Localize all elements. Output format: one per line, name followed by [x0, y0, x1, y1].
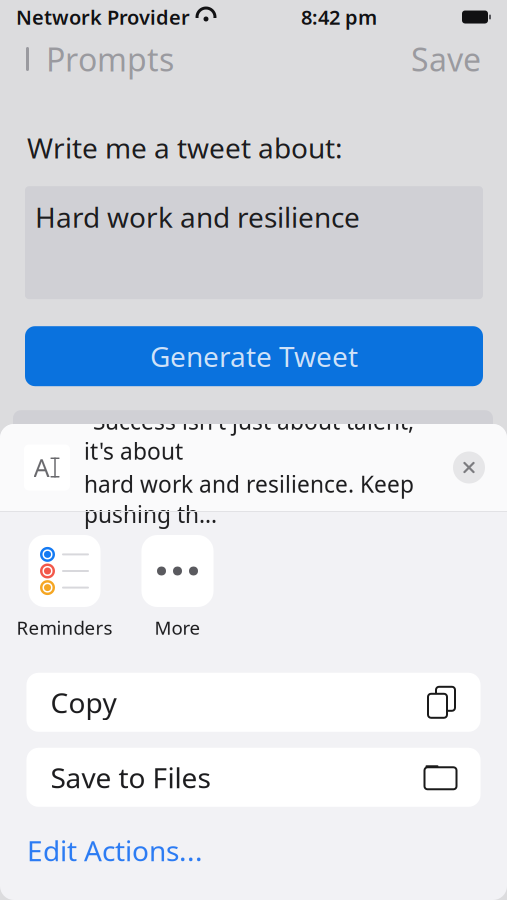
- staticText: Prompts: [46, 38, 174, 80]
- staticText: More: [154, 615, 200, 640]
- staticText: Save: [411, 38, 481, 80]
- button[interactable]: Edit Actions...: [0, 822, 203, 879]
- button[interactable]: Copy: [26, 673, 480, 732]
- staticText: A: [33, 451, 49, 484]
- staticText: Reminders: [16, 615, 112, 640]
- button[interactable]: Save: [393, 36, 499, 82]
- button[interactable]: Close: [447, 445, 491, 489]
- staticText: Hard work and resilience: [35, 198, 360, 235]
- staticText: hard work and resilience. Keep pushing t…: [84, 469, 414, 529]
- button[interactable]: Prompts: [8, 36, 188, 82]
- staticText: 8:42 pm: [301, 4, 377, 30]
- staticText: Save to Files: [50, 759, 210, 796]
- staticText: Copy: [50, 684, 116, 721]
- button[interactable]: Reminders: [8, 535, 121, 640]
- button[interactable]: Save to Files: [26, 748, 480, 807]
- button[interactable]: More: [121, 535, 234, 640]
- staticText: Network Provider: [16, 4, 190, 30]
- staticText: Generate Tweet: [150, 338, 358, 375]
- button[interactable]: Generate Tweet: [25, 326, 483, 386]
- staticText: Write me a tweet about:: [27, 129, 343, 166]
- staticText: "Success isn't just about talent, it's a…: [84, 406, 414, 466]
- staticText: Edit Actions...: [27, 832, 203, 869]
